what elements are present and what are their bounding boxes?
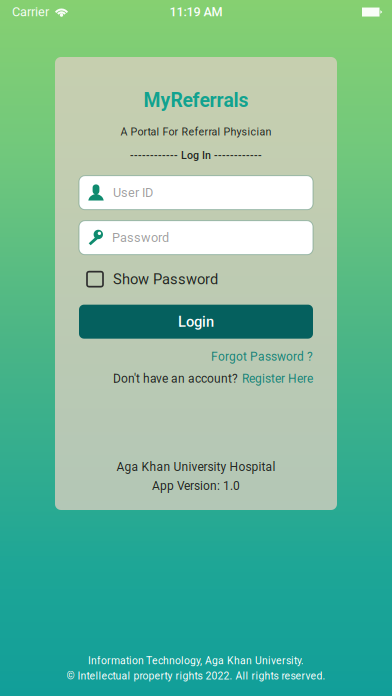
staticText: Password: [112, 230, 169, 245]
staticText: Carrier: [12, 5, 49, 19]
staticText: Information Technology, Aga Khan Univers…: [88, 655, 304, 667]
staticText: Show Password: [113, 271, 218, 288]
staticText: Don't have an account?: [113, 372, 238, 386]
staticText: A Portal For Referral Physician: [120, 126, 271, 138]
staticText: Forgot Password ?: [211, 350, 313, 364]
button[interactable]: Login: [79, 305, 313, 339]
staticText: User ID: [113, 185, 153, 200]
staticText: Login: [178, 313, 214, 330]
staticText: Register Here: [242, 372, 313, 386]
staticText: Aga Khan University Hospital: [116, 460, 275, 474]
button[interactable]: Forgot Password ?: [79, 350, 313, 364]
staticText: 11:19 AM: [169, 5, 222, 19]
staticText: © Intellectual property rights 2022. All…: [66, 670, 325, 682]
staticText: App Version: 1.0: [152, 479, 240, 493]
staticText: ------------ Log In ------------: [130, 149, 262, 162]
button[interactable]: Show Password: [79, 269, 313, 290]
button[interactable]: Register Here: [242, 372, 313, 386]
staticText: MyReferrals: [143, 89, 248, 112]
